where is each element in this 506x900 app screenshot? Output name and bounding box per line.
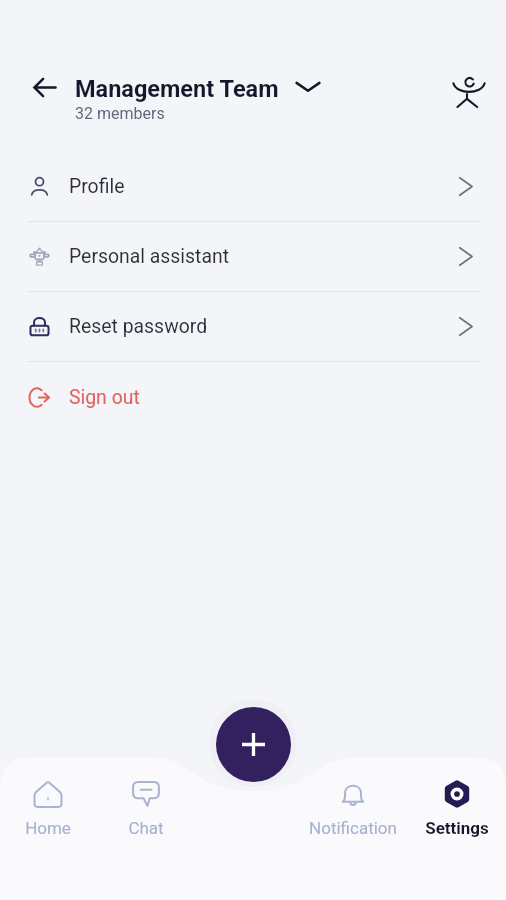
button[interactable]: Chat — [111, 779, 181, 838]
button[interactable]: Add — [216, 707, 291, 782]
button[interactable]: Notification — [303, 779, 403, 838]
button[interactable]: Personal assistant — [0, 222, 506, 292]
staticText: Sign out — [69, 386, 140, 409]
staticText: Settings — [425, 818, 489, 838]
staticText: Management Team — [75, 75, 279, 103]
staticText: 32 members — [75, 104, 165, 123]
staticText: Chat — [128, 818, 164, 838]
button[interactable]: Reset password — [0, 292, 506, 362]
button[interactable]: Sign out — [0, 362, 506, 432]
button[interactable]: Expand team — [291, 69, 325, 103]
staticText: Home — [25, 818, 71, 838]
button[interactable]: Settings — [422, 779, 492, 838]
staticText: Profile — [69, 175, 125, 198]
button[interactable]: Profile — [0, 152, 506, 222]
button[interactable]: Home — [13, 779, 83, 838]
staticText: Personal assistant — [69, 245, 230, 268]
button[interactable]: Back — [26, 69, 62, 105]
button[interactable]: Accessibility — [448, 69, 490, 111]
staticText: Notification — [309, 818, 397, 838]
staticText: Reset password — [69, 315, 208, 338]
